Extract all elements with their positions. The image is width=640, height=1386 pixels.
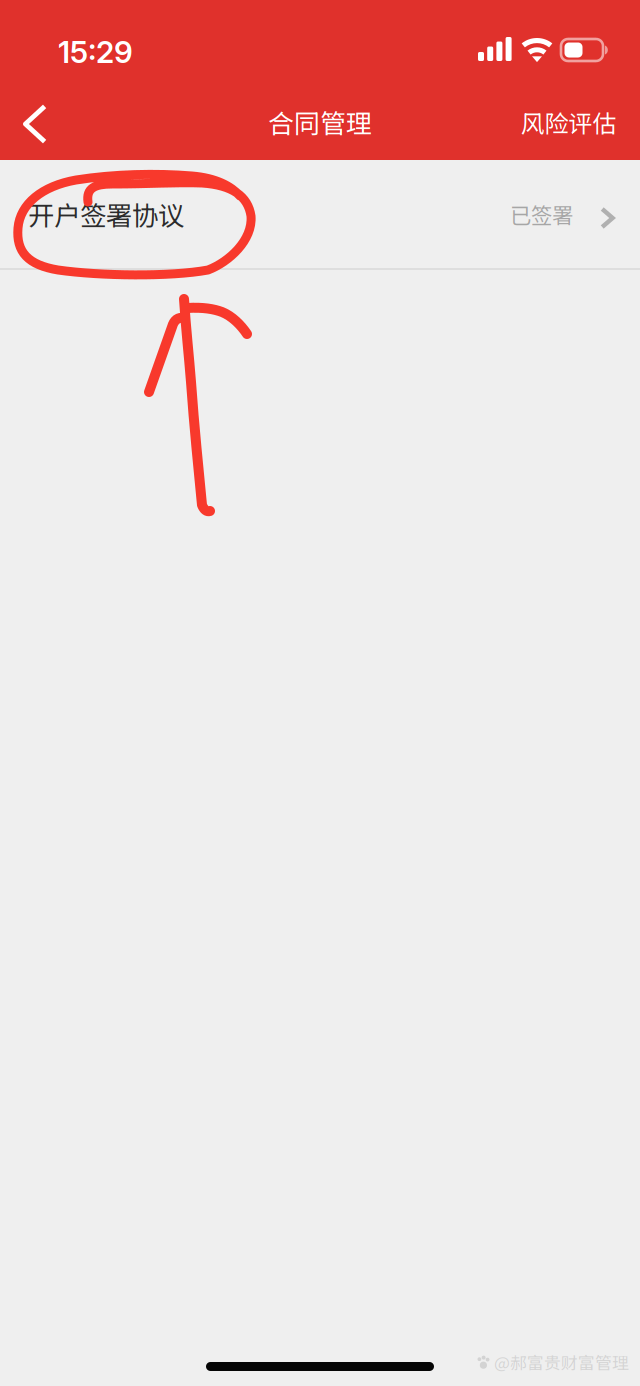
button[interactable]: 返回 [0, 92, 70, 160]
staticText: 风险评估 [520, 105, 616, 139]
staticText: @郝富贵财富管理 [494, 1350, 629, 1374]
button[interactable]: 风险评估 [509, 92, 640, 160]
staticText: 已签署 [510, 199, 573, 229]
staticText: 合同管理 [268, 103, 372, 141]
staticText: 15:29 [58, 34, 133, 70]
staticText: 开户签署协议 [28, 195, 184, 233]
button[interactable]: 开户签署协议 [0, 160, 640, 270]
